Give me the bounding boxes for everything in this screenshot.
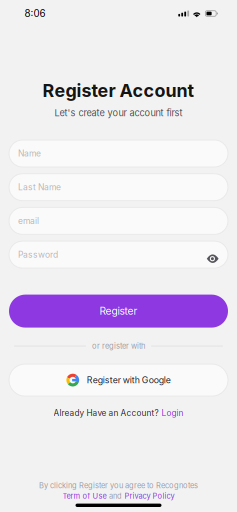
button[interactable]: Register xyxy=(9,295,228,328)
staticText: and xyxy=(109,491,122,501)
staticText: Name xyxy=(18,148,41,159)
staticText: By clicking Register you agree to Recogn… xyxy=(39,481,198,490)
staticText: Privacy Policy xyxy=(124,491,174,501)
staticText: Already Have an Account? xyxy=(53,408,158,418)
button[interactable]: Register with Google xyxy=(9,364,228,396)
staticText: Register xyxy=(99,305,137,317)
staticText: Last Name xyxy=(18,182,61,192)
staticText: or register with xyxy=(92,341,145,351)
staticText: Term of Use xyxy=(62,491,106,501)
staticText: email xyxy=(18,216,39,226)
staticText: Let's create your account first xyxy=(54,107,182,118)
button[interactable]: Privacy Policy xyxy=(124,491,174,501)
button[interactable]: Term of Use xyxy=(62,491,106,501)
staticText: Login xyxy=(161,408,183,418)
staticText: 8:06 xyxy=(24,8,45,19)
button[interactable]: Login xyxy=(161,408,183,418)
staticText: Password xyxy=(18,249,58,260)
staticText: Register Account xyxy=(42,80,194,101)
staticText: Register with Google xyxy=(87,375,171,385)
